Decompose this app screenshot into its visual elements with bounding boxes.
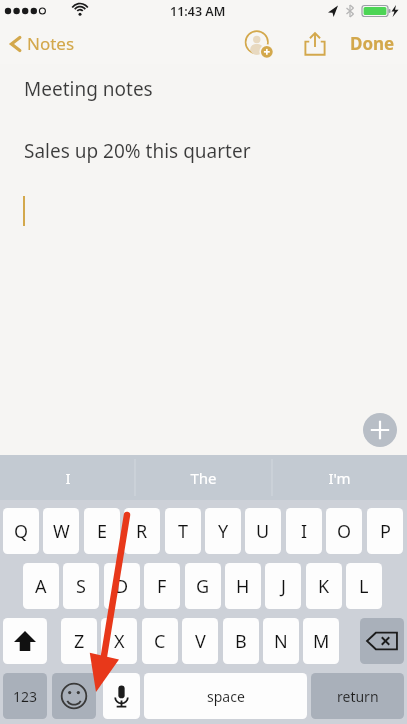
staticText: Y: [218, 519, 229, 544]
button[interactable]: R: [124, 508, 160, 554]
button[interactable]: K: [306, 563, 342, 609]
button[interactable]: Key: [103, 673, 140, 719]
button[interactable]: I: [0, 455, 135, 500]
staticText: H: [236, 574, 250, 599]
staticText: F: [157, 574, 167, 599]
staticText: N: [274, 629, 288, 654]
button[interactable]: Q: [3, 508, 39, 554]
staticText: G: [196, 574, 210, 599]
staticText: P: [380, 519, 391, 544]
button[interactable]: Z: [61, 618, 97, 664]
button[interactable]: C: [142, 618, 178, 664]
staticText: space: [207, 687, 245, 706]
button[interactable]: Key: [3, 618, 47, 664]
staticText: A: [35, 574, 47, 599]
button[interactable]: G: [185, 563, 221, 609]
button[interactable]: Backspace: [360, 618, 404, 664]
button[interactable]: T: [165, 508, 201, 554]
button[interactable]: D: [104, 563, 140, 609]
staticText: Notes: [27, 32, 75, 55]
button[interactable]: X: [101, 618, 137, 664]
staticText: M: [313, 629, 330, 654]
button[interactable]: A: [23, 563, 59, 609]
staticText: W: [53, 519, 70, 544]
staticText: L: [359, 574, 369, 599]
button[interactable]: Key: [52, 673, 96, 719]
staticText: R: [136, 519, 148, 544]
button[interactable]: Done: [346, 26, 399, 61]
button[interactable]: E: [84, 508, 120, 554]
button[interactable]: The: [135, 455, 272, 500]
staticText: I: [65, 468, 71, 488]
button[interactable]: M: [303, 618, 339, 664]
button[interactable]: I'm: [272, 455, 407, 500]
staticText: X: [114, 629, 125, 654]
button[interactable]: W: [43, 508, 79, 554]
button[interactable]: 123: [3, 673, 47, 719]
button[interactable]: V: [182, 618, 218, 664]
button[interactable]: B: [223, 618, 259, 664]
button[interactable]: Notes: [6, 28, 79, 59]
button[interactable]: P: [367, 508, 403, 554]
button[interactable]: U: [245, 508, 281, 554]
staticText: The: [190, 468, 217, 488]
button[interactable]: Share: [298, 27, 332, 61]
staticText: Meeting notes: [24, 76, 153, 102]
button[interactable]: Add attachment: [363, 413, 397, 447]
button[interactable]: S: [63, 563, 99, 609]
button[interactable]: O: [326, 508, 362, 554]
staticText: V: [195, 629, 206, 654]
staticText: S: [76, 574, 86, 599]
button[interactable]: Add people: [242, 27, 276, 61]
staticText: 123: [13, 687, 38, 706]
staticText: return: [337, 687, 379, 706]
staticText: T: [178, 519, 189, 544]
staticText: D: [115, 574, 129, 599]
button[interactable]: Y: [205, 508, 241, 554]
staticText: E: [97, 519, 108, 544]
staticText: Done: [350, 32, 395, 55]
staticText: J: [281, 574, 286, 599]
staticText: I'm: [328, 468, 351, 488]
button[interactable]: N: [263, 618, 299, 664]
staticText: U: [256, 519, 270, 544]
staticText: Q: [14, 519, 29, 544]
staticText: Z: [74, 629, 85, 654]
button[interactable]: space: [144, 673, 307, 719]
button[interactable]: return: [311, 673, 404, 719]
button[interactable]: L: [346, 563, 382, 609]
staticText: B: [235, 629, 247, 654]
button[interactable]: H: [225, 563, 261, 609]
staticText: Sales up 20% this quarter: [24, 138, 251, 164]
staticText: O: [337, 519, 352, 544]
button[interactable]: I: [286, 508, 322, 554]
button[interactable]: J: [265, 563, 301, 609]
staticText: I: [301, 519, 308, 544]
staticText: K: [318, 574, 330, 599]
button[interactable]: F: [144, 563, 180, 609]
staticText: C: [154, 629, 166, 654]
staticText: 11:43 AM: [170, 3, 226, 20]
